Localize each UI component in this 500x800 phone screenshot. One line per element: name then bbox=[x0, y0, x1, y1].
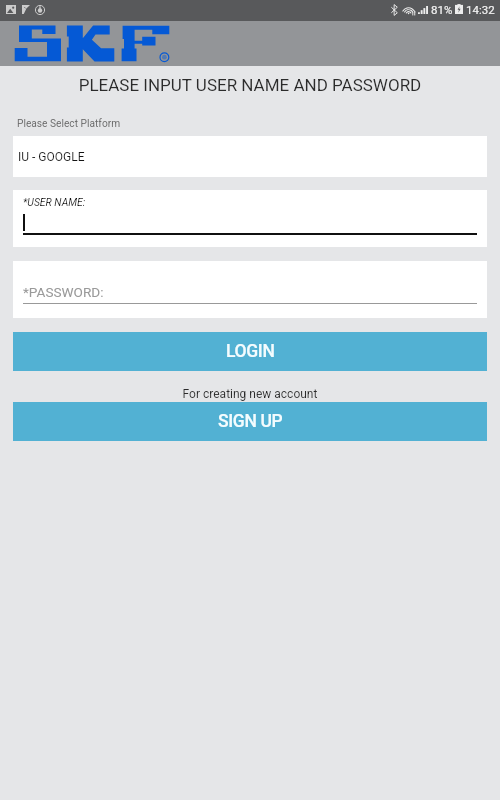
staticText: 81% bbox=[431, 3, 453, 16]
staticText: For creating new account bbox=[0, 387, 500, 401]
staticText: Please Select Platform bbox=[17, 118, 121, 130]
button[interactable]: SIGN UP bbox=[13, 402, 487, 441]
staticText: PLEASE INPUT USER NAME AND PASSWORD bbox=[0, 75, 500, 95]
staticText: 14:32 bbox=[466, 3, 495, 16]
button[interactable]: LOGIN bbox=[13, 332, 487, 371]
staticText: *USER NAME: bbox=[23, 196, 86, 208]
staticText: LOGIN bbox=[226, 341, 275, 362]
staticText: SIGN UP bbox=[218, 411, 283, 432]
staticText: IU - GOOGLE bbox=[18, 150, 85, 164]
button[interactable]: IU - GOOGLE bbox=[13, 136, 487, 177]
button[interactable]: *PASSWORD: bbox=[13, 261, 487, 318]
button[interactable]: *USER NAME: bbox=[13, 190, 487, 247]
staticText: *PASSWORD: bbox=[23, 284, 104, 300]
